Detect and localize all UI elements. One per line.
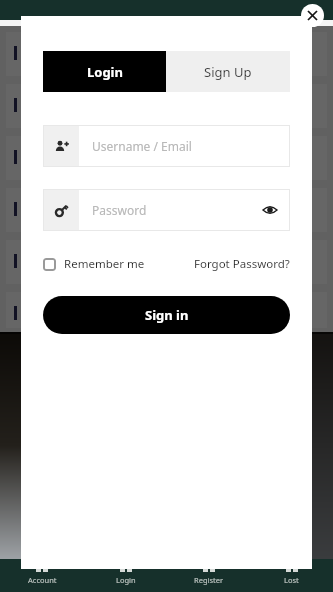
staticText: Login	[116, 575, 136, 585]
button[interactable]: Sign in	[43, 296, 290, 334]
staticText: Sign Up	[204, 63, 252, 81]
staticText: Password	[92, 202, 147, 218]
button[interactable]: Password	[43, 189, 290, 231]
button[interactable]: Show password	[263, 203, 277, 217]
button[interactable]: Login	[43, 51, 166, 92]
other: Password	[43, 189, 79, 231]
staticText: Login	[87, 63, 123, 81]
button[interactable]: Forgot Password?	[194, 256, 290, 272]
staticText: Register	[194, 575, 224, 585]
button[interactable]: Close	[301, 4, 324, 27]
button[interactable]: Sign Up	[166, 51, 290, 92]
button[interactable]: Lost	[250, 559, 333, 592]
staticText: Forgot Password?	[194, 256, 290, 272]
staticText: Sign in	[145, 306, 189, 324]
button[interactable]: Login	[84, 559, 167, 592]
staticText: Username / Email	[92, 138, 192, 154]
button[interactable]: Remember me	[43, 256, 145, 272]
other: Username	[43, 125, 79, 167]
staticText: Remember me	[64, 256, 145, 272]
button[interactable]: Register	[167, 559, 250, 592]
staticText: Lost	[284, 575, 299, 585]
button[interactable]: Username	[43, 125, 290, 167]
button[interactable]: Account	[0, 559, 84, 592]
staticText: Account	[28, 575, 57, 585]
